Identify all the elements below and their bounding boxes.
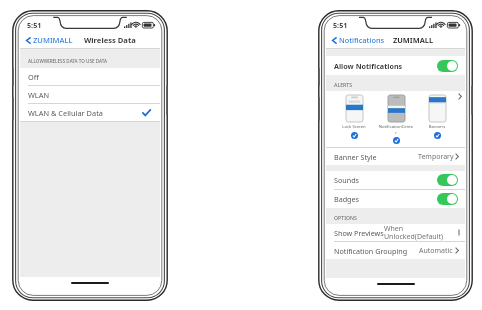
button[interactable] (437, 174, 458, 186)
staticText: Automatic (419, 246, 453, 256)
button[interactable]: Badges (326, 190, 465, 208)
staticText: Sounds (334, 175, 360, 185)
staticText: ZUMIMALL (33, 35, 73, 45)
staticText: Badges (334, 194, 360, 204)
button[interactable]: Allow Notifications (326, 56, 465, 75)
button[interactable]: WLAN & Cellular Data (20, 104, 160, 121)
staticText: When Unlocked(Default) (384, 224, 459, 241)
staticText: Allow Notifications (334, 61, 403, 71)
staticText: ALERTS (334, 81, 353, 88)
staticText: 5:51 (333, 20, 348, 30)
button[interactable]: Lock Screen (336, 95, 372, 139)
button[interactable]: Sounds (326, 171, 465, 189)
button[interactable]: Show Previews (326, 224, 465, 241)
staticText: Notification Grouping (334, 246, 408, 256)
button[interactable]: Notifications (332, 35, 385, 45)
button[interactable] (437, 60, 458, 72)
staticText: Banner Style (334, 152, 377, 162)
button[interactable]: Banner Style (326, 148, 465, 165)
staticText: NotificationCenter (378, 124, 414, 135)
staticText: Lock Screen (336, 124, 372, 130)
button[interactable]: Off (20, 68, 160, 85)
staticText: Notifications (339, 35, 385, 45)
staticText: WLAN (28, 90, 50, 100)
button[interactable]: Notification Grouping (326, 242, 465, 259)
button[interactable]: Banners (419, 95, 455, 139)
staticText: ALLOWWIRELESS DATA TO USE DATA (28, 58, 107, 64)
staticText: 5:51 (27, 20, 42, 30)
button[interactable]: WLAN (20, 86, 160, 103)
staticText: Wireless Data (84, 35, 136, 45)
button[interactable] (437, 193, 458, 205)
button[interactable]: ZUMIMALL (26, 35, 73, 45)
staticText: Off (28, 72, 39, 82)
staticText: WLAN & Cellular Data (28, 108, 103, 118)
staticText: Banners (419, 124, 455, 130)
button[interactable]: NotificationCenter (378, 95, 414, 144)
staticText: ZUMIMALL (393, 35, 434, 45)
staticText: Show Previews (334, 228, 384, 238)
other: More (458, 93, 462, 100)
staticText: Temporary (418, 152, 454, 162)
staticText: OPTIONS (334, 214, 357, 221)
